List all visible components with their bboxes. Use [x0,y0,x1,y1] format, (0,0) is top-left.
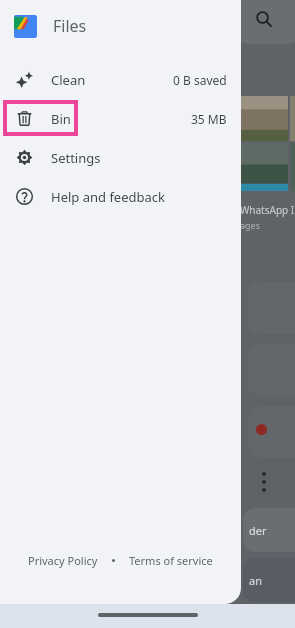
button[interactable]: Terms of service [125,549,217,572]
other: Bin [16,110,33,127]
staticText: Settings [51,149,101,167]
staticText: ages [240,219,260,231]
other: Help and feedback [16,188,33,205]
staticText: Privacy Policy [28,553,98,568]
staticText: Clean [51,71,86,89]
staticText: 35 MB [191,111,227,127]
other: Settings [16,149,33,166]
button[interactable]: Help and feedback [0,177,241,216]
button[interactable]: Files app icon [0,0,241,52]
button[interactable]: Clean [0,60,241,99]
staticText: Bin [51,110,71,128]
button[interactable]: Bin [0,99,241,138]
staticText: der [249,523,267,538]
staticText: Files [53,15,87,37]
button[interactable]: Privacy Policy [24,549,102,572]
other: Clean [16,71,33,88]
staticText: Terms of service [129,553,213,568]
staticText: Help and feedback [51,188,165,206]
staticText: 0 B saved [173,72,227,88]
staticText: WhatsApp I [240,203,295,217]
button[interactable]: Settings [0,138,241,177]
other: Files app icon [14,15,37,38]
staticText: an [249,573,262,588]
